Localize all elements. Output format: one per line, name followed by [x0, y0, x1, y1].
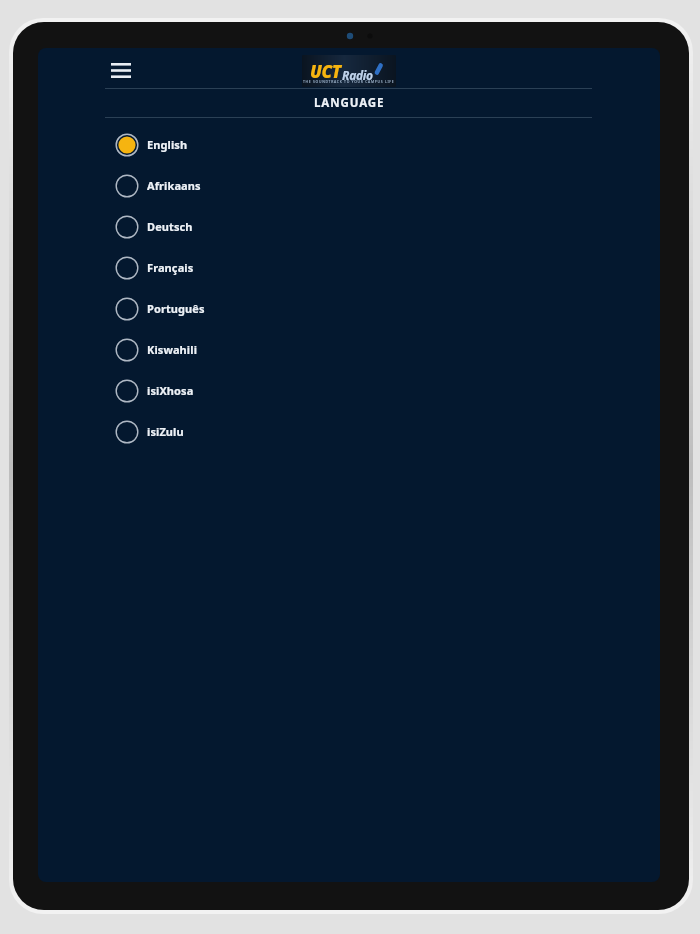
staticText: Afrikaans	[147, 178, 201, 193]
staticText: isiZulu	[147, 424, 184, 439]
staticText: Kiswahili	[147, 342, 198, 357]
staticText: Deutsch	[147, 219, 193, 234]
button[interactable]: Français	[38, 247, 660, 288]
button[interactable]: Deutsch	[38, 206, 660, 247]
button[interactable]: Português	[38, 288, 660, 329]
staticText: UCT	[310, 60, 341, 83]
button[interactable]: isiXhosa	[38, 370, 660, 411]
staticText: Français	[147, 260, 194, 275]
button[interactable]: Afrikaans	[38, 165, 660, 206]
button[interactable]: Menu	[108, 57, 134, 83]
button[interactable]: UCT Radio	[302, 55, 396, 87]
button[interactable]: English	[38, 124, 660, 165]
button[interactable]: isiZulu	[38, 411, 660, 452]
staticText: THE SOUNDTRACK TO YOUR CAMPUS LIFE	[303, 79, 395, 84]
staticText: isiXhosa	[147, 383, 194, 398]
staticText: LANGUAGE	[314, 95, 385, 111]
staticText: English	[147, 137, 188, 152]
staticText: Português	[147, 301, 205, 316]
staticText: Radio	[342, 67, 373, 83]
button[interactable]: Kiswahili	[38, 329, 660, 370]
